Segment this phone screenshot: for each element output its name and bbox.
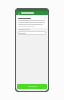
button[interactable]: Back bbox=[17, 12, 20, 15]
button[interactable] bbox=[18, 31, 46, 35]
button[interactable]: More options bbox=[17, 16, 47, 28]
button[interactable] bbox=[17, 84, 47, 89]
